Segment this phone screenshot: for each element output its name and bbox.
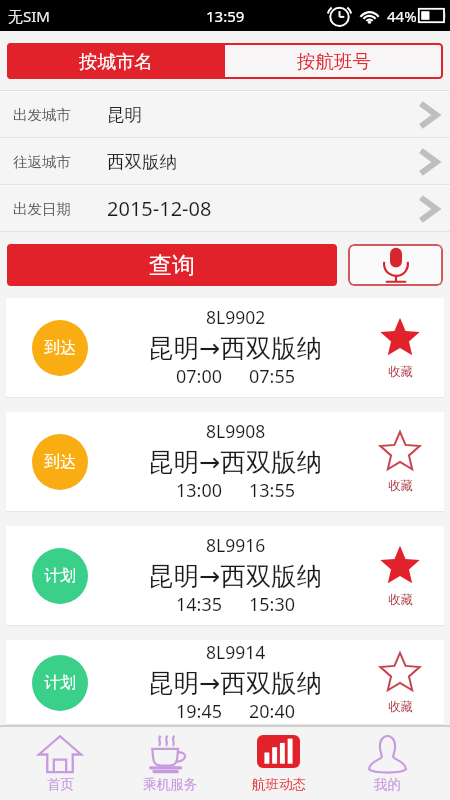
staticText: 13:59 [206,6,245,26]
staticText: 8L9908 [206,419,266,443]
staticText: 查询 [149,251,195,280]
button[interactable]: 按城市名 [7,43,225,79]
staticText: 到达 [44,338,76,358]
staticText: 13:55 [249,478,296,503]
staticText: 计划 [44,566,76,586]
staticText: 2015-12-08 [107,195,212,222]
staticText: 13:00 [176,478,223,503]
staticText: 西双版纳 [107,151,177,173]
staticText: 按航班号 [297,50,371,73]
staticText: 8L9902 [206,305,266,329]
staticText: 07:00 [176,364,223,389]
button[interactable]: 收藏 [380,318,420,380]
staticText: 首页 [47,776,74,793]
staticText: 无SIM [8,6,50,26]
staticText: 收藏 [388,699,413,715]
staticText: 昆明→西双版纳 [148,446,323,478]
staticText: 出发城市 [13,106,71,124]
staticText: 20:40 [249,699,296,724]
staticText: 14:35 [176,592,223,617]
staticText: 收藏 [388,478,413,494]
button[interactable]: 首页 [5,727,115,800]
button[interactable]: 计划 [6,640,444,725]
staticText: 计划 [44,673,76,693]
button[interactable]: 出发日期 [0,186,450,231]
button[interactable]: 我的 [333,727,442,800]
staticText: 按城市名 [79,50,153,73]
staticText: 昆明→西双版纳 [148,332,323,364]
staticText: 乘机服务 [143,776,197,793]
button[interactable]: 乘机服务 [115,727,224,800]
staticText: 收藏 [388,364,413,380]
staticText: 出发日期 [13,200,71,218]
staticText: 昆明→西双版纳 [148,667,323,699]
staticText: 昆明→西双版纳 [148,560,323,592]
staticText: 收藏 [388,592,413,608]
button[interactable]: 到达 [6,412,444,512]
staticText: 07:55 [249,364,296,389]
staticText: 航班动态 [252,776,306,793]
button[interactable]: 收藏 [380,653,420,715]
button[interactable]: 语音输入 [348,244,443,286]
button[interactable]: 查询 [7,244,337,286]
button[interactable]: 收藏 [380,546,420,608]
staticText: 到达 [44,452,76,472]
staticText: 往返城市 [13,153,71,171]
button[interactable]: 到达 [6,298,444,398]
staticText: 15:30 [249,592,296,617]
staticText: 19:45 [176,699,223,724]
staticText: 8L9916 [206,533,266,557]
button[interactable]: 计划 [6,526,444,626]
button[interactable]: 航班动态 [224,727,333,800]
button[interactable]: 按航班号 [225,43,443,79]
button[interactable]: 出发城市 [0,92,450,137]
staticText: 8L9914 [206,640,266,664]
button[interactable]: 往返城市 [0,139,450,184]
button[interactable]: 收藏 [380,432,420,494]
staticText: 44% [387,6,417,26]
staticText: 我的 [374,776,401,793]
staticText: 昆明 [107,104,142,126]
